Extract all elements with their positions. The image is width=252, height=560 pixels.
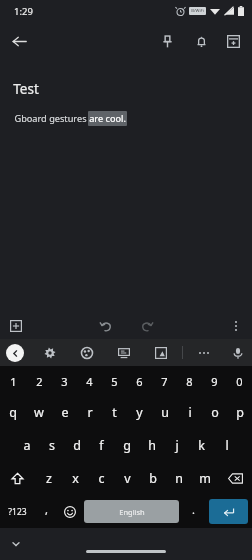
- button[interactable]: 2: [26, 366, 52, 396]
- staticText: B/WiFi: [191, 8, 204, 14]
- button[interactable]: x: [62, 462, 88, 495]
- button[interactable]: Undo: [93, 313, 119, 339]
- staticText: c: [98, 470, 105, 487]
- staticText: ?123: [8, 506, 27, 518]
- button[interactable]: q: [0, 396, 26, 429]
- staticText: u: [161, 404, 169, 421]
- button[interactable]: ,: [34, 495, 58, 528]
- button[interactable]: Add: [6, 313, 26, 339]
- button[interactable]: Enter: [209, 499, 248, 524]
- button[interactable]: Redo: [133, 313, 159, 339]
- staticText: 0: [236, 374, 243, 389]
- button[interactable]: a: [14, 429, 39, 462]
- button[interactable]: Stickers: [113, 342, 135, 364]
- button[interactable]: Voice input: [230, 342, 245, 364]
- button[interactable]: d: [64, 429, 89, 462]
- staticText: 9: [211, 374, 218, 389]
- button[interactable]: j: [164, 429, 189, 462]
- button[interactable]: ?123: [0, 495, 34, 528]
- button[interactable]: w: [26, 396, 52, 429]
- staticText: .: [192, 502, 195, 517]
- button[interactable]: .: [181, 495, 205, 528]
- button[interactable]: Archive: [218, 24, 248, 58]
- staticText: 1:29: [14, 5, 33, 18]
- button[interactable]: z: [35, 462, 62, 495]
- button[interactable]: f: [89, 429, 114, 462]
- button[interactable]: h: [139, 429, 164, 462]
- staticText: m: [199, 470, 211, 487]
- button[interactable]: i: [177, 396, 202, 429]
- button[interactable]: r: [77, 396, 102, 429]
- button[interactable]: More: [193, 342, 215, 364]
- staticText: j: [175, 437, 179, 454]
- staticText: 7: [161, 374, 168, 389]
- button[interactable]: 5: [102, 366, 127, 396]
- staticText: ,: [45, 502, 48, 517]
- button[interactable]: 6: [127, 366, 152, 396]
- staticText: q: [9, 404, 17, 421]
- staticText: v: [124, 470, 131, 487]
- button[interactable]: Emoji: [58, 495, 82, 528]
- button[interactable]: 9: [202, 366, 227, 396]
- button[interactable]: k: [189, 429, 214, 462]
- staticText: d: [73, 437, 81, 454]
- staticText: Test: [13, 80, 39, 98]
- staticText: s: [49, 437, 55, 454]
- staticText: r: [87, 404, 93, 421]
- button[interactable]: p: [227, 396, 252, 429]
- button[interactable]: v: [114, 462, 140, 495]
- staticText: n: [175, 470, 183, 487]
- button[interactable]: 8: [177, 366, 202, 396]
- button[interactable]: m: [192, 462, 218, 495]
- button[interactable]: More options: [226, 313, 246, 339]
- staticText: 2: [36, 374, 43, 389]
- button[interactable]: 1: [0, 366, 26, 396]
- staticText: e: [61, 404, 69, 421]
- staticText: l: [225, 437, 229, 454]
- staticText: x: [72, 470, 79, 487]
- staticText: t: [112, 404, 117, 421]
- button[interactable]: s: [39, 429, 64, 462]
- staticText: 6: [136, 374, 143, 389]
- button[interactable]: Close toolbar: [6, 344, 24, 362]
- staticText: y: [136, 404, 143, 421]
- staticText: f: [99, 437, 104, 454]
- staticText: w: [34, 404, 44, 421]
- staticText: 3: [61, 374, 68, 389]
- staticText: are cool.: [89, 112, 126, 125]
- button[interactable]: Settings: [39, 342, 61, 364]
- button[interactable]: Backspace: [218, 462, 252, 495]
- staticText: i: [188, 404, 192, 421]
- button[interactable]: 3: [52, 366, 77, 396]
- staticText: English: [119, 507, 145, 517]
- button[interactable]: c: [88, 462, 114, 495]
- staticText: h: [148, 437, 156, 454]
- staticText: o: [211, 404, 219, 421]
- staticText: z: [46, 470, 52, 487]
- staticText: a: [23, 437, 31, 454]
- button[interactable]: e: [52, 396, 77, 429]
- staticText: g: [123, 437, 131, 454]
- button[interactable]: n: [166, 462, 192, 495]
- button[interactable]: g: [114, 429, 139, 462]
- button[interactable]: Themes: [76, 342, 98, 364]
- button[interactable]: 0: [227, 366, 252, 396]
- button[interactable]: 4: [77, 366, 102, 396]
- button[interactable]: Hide keyboard: [7, 535, 25, 553]
- button[interactable]: Shift: [0, 462, 35, 495]
- button[interactable]: Back: [0, 22, 38, 60]
- button[interactable]: Reminder: [184, 24, 218, 58]
- button[interactable]: l: [214, 429, 239, 462]
- button[interactable]: u: [152, 396, 177, 429]
- button[interactable]: y: [127, 396, 152, 429]
- staticText: p: [236, 404, 244, 421]
- staticText: 5: [111, 374, 118, 389]
- staticText: k: [198, 437, 205, 454]
- button[interactable]: b: [140, 462, 166, 495]
- button[interactable]: o: [202, 396, 227, 429]
- button[interactable]: Pin: [150, 24, 184, 58]
- button[interactable]: 7: [152, 366, 177, 396]
- button[interactable]: English: [84, 500, 179, 523]
- button[interactable]: Clipboard: [150, 342, 172, 364]
- button[interactable]: t: [102, 396, 127, 429]
